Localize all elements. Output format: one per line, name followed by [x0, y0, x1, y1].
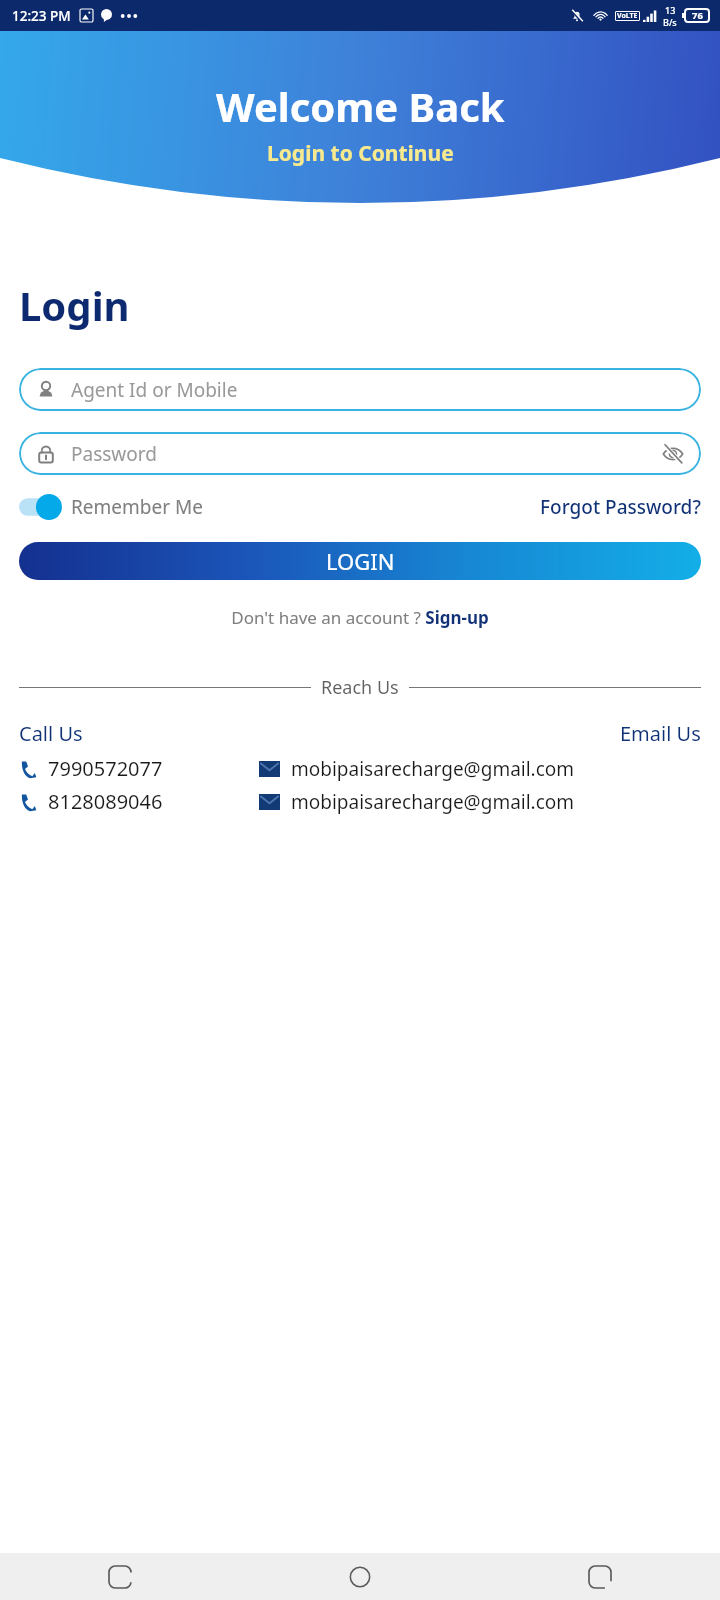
staticText: mobipaisarecharge@gmail.com [291, 756, 575, 782]
button[interactable]: Home [240, 1553, 480, 1600]
staticText: Email Us [620, 720, 701, 747]
button[interactable]: Back [480, 1553, 720, 1600]
staticText: 12:23 PM [12, 7, 71, 25]
button[interactable]: Remember Me [19, 494, 203, 520]
button[interactable]: Recent apps [0, 1553, 240, 1600]
staticText: Agent Id or Mobile [71, 377, 238, 403]
button[interactable]: Forgot Password? [540, 494, 701, 520]
staticText: 8128089046 [48, 788, 163, 815]
button[interactable]: Agent Id or Mobile [19, 368, 701, 411]
button[interactable]: Call 7990572077 [19, 755, 259, 782]
staticText: VoLTE [617, 11, 638, 21]
staticText: B/s [663, 16, 677, 28]
staticText: 76 [692, 9, 703, 22]
staticText: 7990572077 [48, 755, 163, 782]
button[interactable]: Call 8128089046 [19, 788, 259, 815]
staticText: Login [19, 278, 130, 332]
staticText: Reach Us [321, 675, 399, 700]
staticText: Welcome Back [216, 79, 505, 133]
button[interactable]: Password [19, 432, 701, 475]
staticText: LOGIN [326, 546, 395, 576]
other: Call 8128089046 [19, 793, 37, 811]
staticText: mobipaisarecharge@gmail.com [291, 789, 575, 815]
staticText: Don't have an account ? Sign-up [231, 606, 489, 629]
other: Email mobipaisarecharge@gmail.com [259, 794, 280, 810]
staticText: 13 [665, 4, 676, 16]
staticText: Password [71, 441, 157, 467]
button[interactable]: LOGIN [19, 542, 701, 580]
other: Show password [662, 443, 684, 465]
staticText: Login to Continue [267, 139, 454, 168]
button[interactable]: Email mobipaisarecharge@gmail.com [259, 789, 575, 815]
staticText: Call Us [19, 720, 83, 747]
button[interactable]: Email mobipaisarecharge@gmail.com [259, 756, 575, 782]
staticText: Forgot Password? [540, 494, 701, 520]
button[interactable]: Don't have an account ? Sign-up [231, 606, 489, 629]
staticText: Remember Me [71, 494, 203, 520]
other: Email mobipaisarecharge@gmail.com [259, 761, 280, 777]
other: Call 7990572077 [19, 760, 37, 778]
